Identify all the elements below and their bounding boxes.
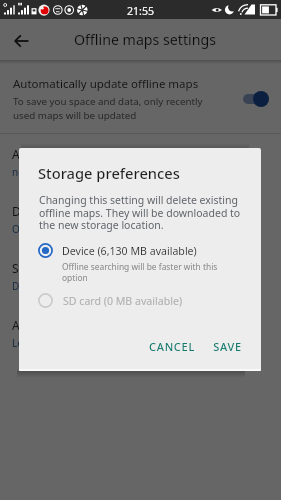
button[interactable]: SAVE (208, 334, 247, 359)
staticText: To save you space and data, only recentl… (13, 95, 215, 121)
button[interactable]: Automatic updates (0, 134, 281, 191)
staticText: Device (6,130 MB available) (62, 244, 197, 258)
button[interactable]: Automatically update offline maps (0, 64, 281, 133)
staticText: SD card (0 MB available) (63, 294, 183, 308)
staticText: Offline maps settings (74, 30, 217, 49)
staticText: Storage preferences (12, 260, 126, 276)
staticText: Offline searching will be faster with th… (62, 261, 220, 283)
staticText: Device (12, 279, 43, 293)
staticText: 21:55 (127, 4, 155, 18)
staticText: SAVE (213, 339, 242, 354)
staticText: About offline maps (12, 317, 120, 333)
button[interactable]: SD card (0 MB available) (19, 293, 261, 308)
staticText: CANCEL (149, 339, 195, 354)
button[interactable]: Toggle automatic updates (241, 89, 273, 109)
button[interactable]: Back (0, 19, 43, 60)
staticText: Download (12, 203, 70, 219)
button[interactable]: Download (0, 191, 281, 248)
button[interactable]: Device (6,130 MB available) (19, 243, 261, 282)
staticText: Changing this setting will delete existi… (39, 193, 242, 232)
button[interactable]: Storage preferences (0, 248, 281, 305)
button[interactable]: CANCEL (144, 334, 200, 359)
staticText: now (12, 165, 32, 179)
staticText: Storage preferences (38, 163, 180, 183)
button[interactable]: About offline maps (0, 305, 281, 362)
staticText: Automatic updates (12, 146, 119, 162)
staticText: Learn more (12, 336, 67, 350)
staticText: Automatically update offline maps (13, 76, 199, 92)
staticText: Only on Wi-Fi (12, 222, 74, 236)
